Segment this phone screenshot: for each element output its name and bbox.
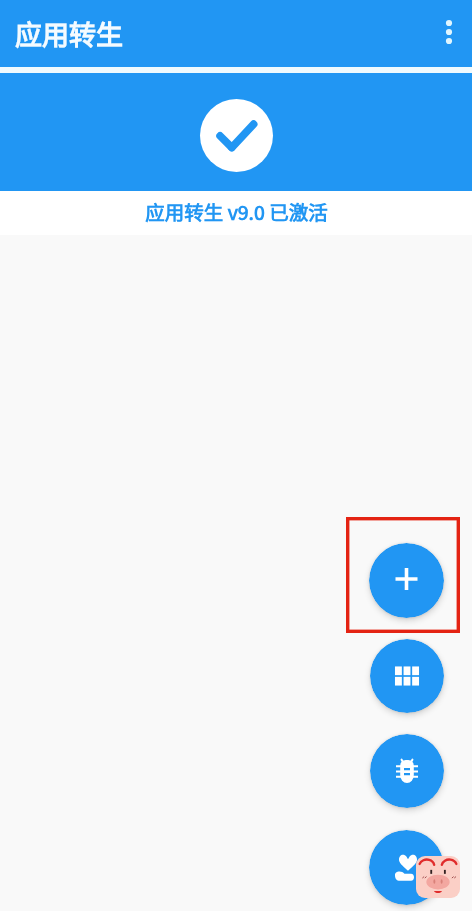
button[interactable]: 应用转生 bbox=[15, 0, 123, 67]
staticText: 应用转生 v9.0 已激活 bbox=[145, 197, 328, 225]
button[interactable]: Add app bbox=[369, 543, 444, 618]
button[interactable]: More options bbox=[425, 8, 472, 56]
button[interactable]: Report a bug bbox=[370, 734, 444, 808]
button[interactable]: 应用转生 v9.0 已激活 bbox=[0, 191, 472, 235]
button[interactable]: All apps bbox=[370, 639, 444, 713]
button[interactable]: Donate bbox=[369, 830, 444, 905]
staticText: 应用转生 bbox=[15, 14, 123, 53]
button[interactable]: Pig assistant bbox=[416, 856, 460, 898]
